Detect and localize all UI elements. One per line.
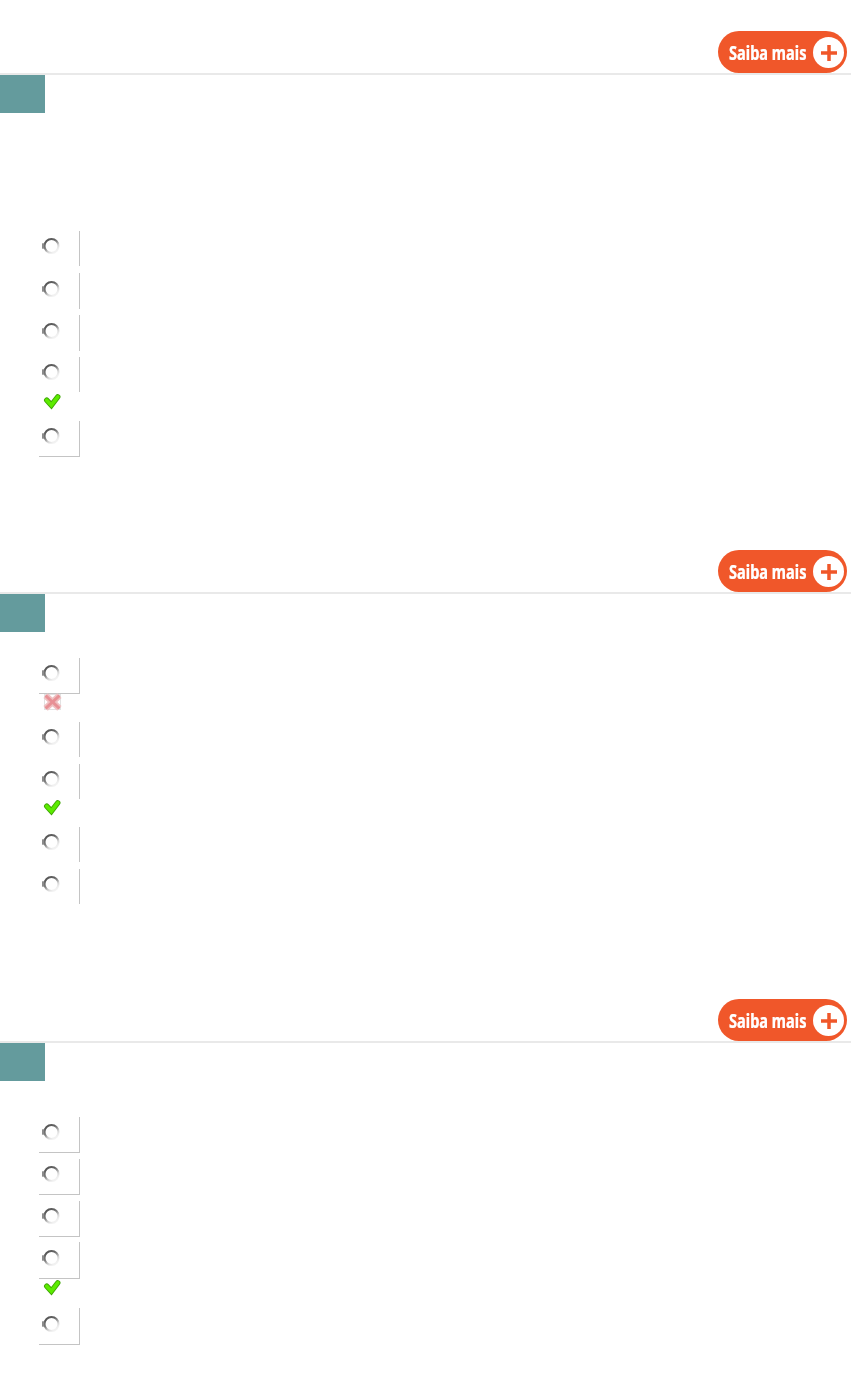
other: Saiba mais	[813, 37, 844, 68]
button[interactable]: Saiba mais	[718, 550, 847, 592]
button[interactable]: Answer option	[39, 231, 80, 266]
button[interactable]: Answer option	[39, 1242, 80, 1278]
button[interactable]: Answer option	[39, 869, 80, 904]
button[interactable]: Answer option	[39, 764, 80, 799]
button[interactable]: Answer option	[39, 722, 80, 757]
button[interactable]: Answer option	[39, 1201, 80, 1236]
other: Saiba mais	[813, 1005, 844, 1036]
staticText: Saiba mais	[729, 558, 807, 585]
staticText: Saiba mais	[729, 39, 807, 66]
button[interactable]: Answer option	[39, 1159, 80, 1194]
other: Saiba mais	[813, 556, 844, 587]
button[interactable]: Answer option	[39, 273, 80, 309]
button[interactable]: Answer option	[39, 827, 80, 862]
button[interactable]: Answer option	[39, 1117, 80, 1152]
button[interactable]: Answer option	[39, 658, 80, 693]
button[interactable]: Answer option	[39, 315, 80, 351]
button[interactable]: Saiba mais	[718, 999, 847, 1041]
staticText: Saiba mais	[729, 1007, 807, 1034]
button[interactable]: Answer option	[39, 1308, 80, 1344]
button[interactable]: Saiba mais	[718, 31, 847, 73]
button[interactable]: Answer option	[39, 357, 80, 392]
button[interactable]: Answer option	[39, 421, 80, 456]
